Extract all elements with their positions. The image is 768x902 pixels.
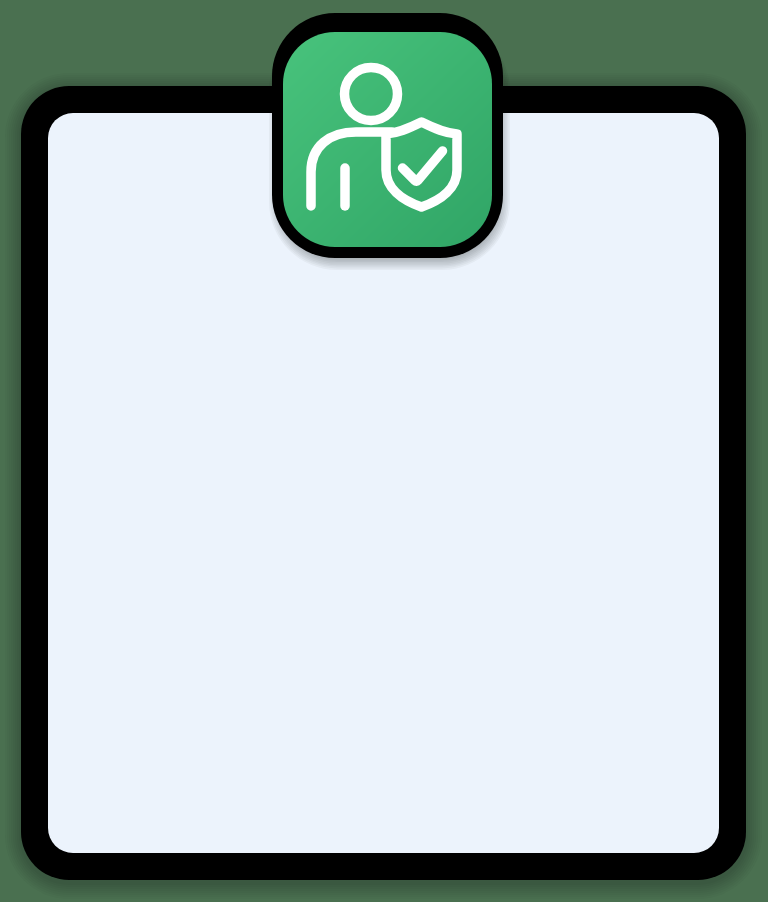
button[interactable]: Personal protection card: [0, 0, 768, 902]
